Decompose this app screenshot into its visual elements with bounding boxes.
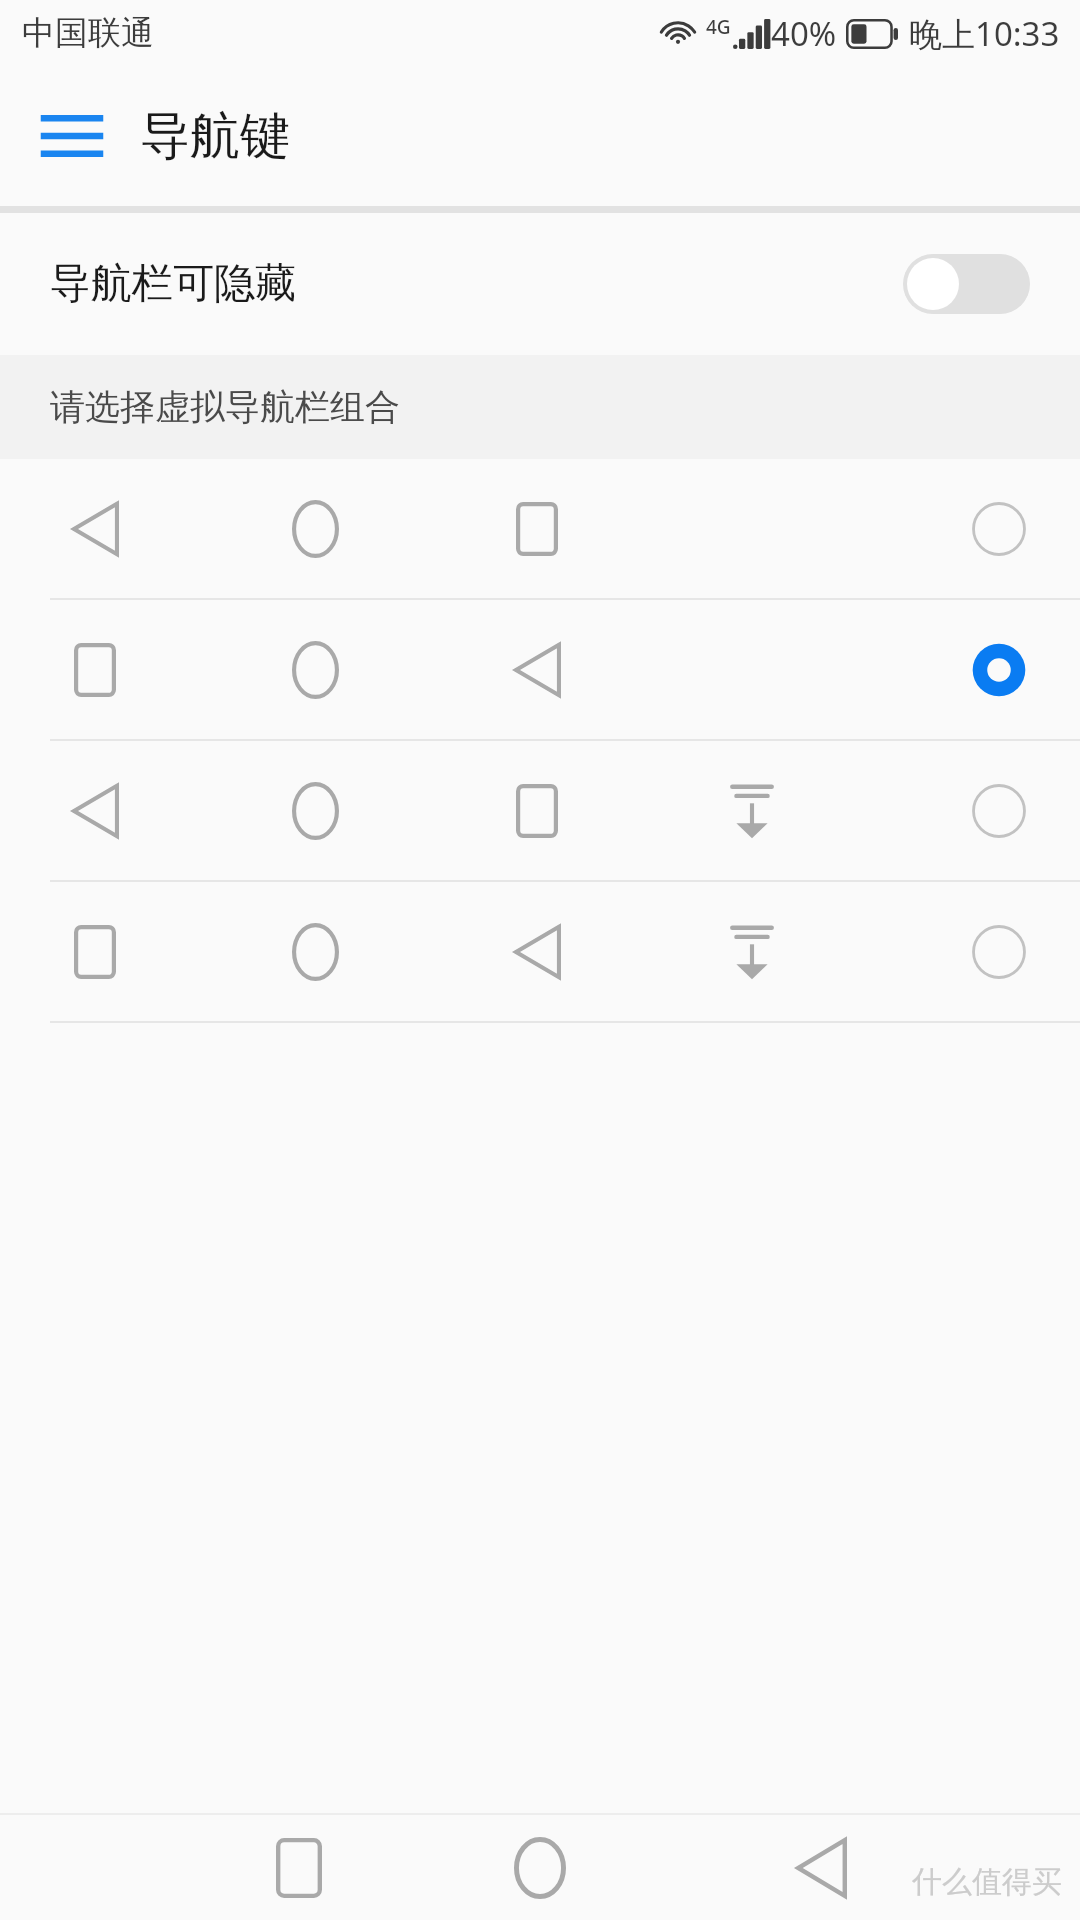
button[interactable] [0, 459, 1080, 600]
button[interactable]: Back [777, 1824, 865, 1912]
button[interactable]: Menu [30, 94, 114, 178]
staticText: 请选择虚拟导航栏组合 [50, 385, 400, 429]
staticText: 40% [771, 11, 837, 56]
button[interactable] [0, 600, 1080, 741]
other: Navigation bar hideable toggle [903, 254, 1030, 314]
button[interactable]: Recent apps [255, 1824, 343, 1912]
staticText: 中国联通 [22, 12, 154, 54]
button[interactable]: Home [496, 1824, 584, 1912]
button[interactable] [0, 882, 1080, 1023]
button[interactable] [0, 741, 1080, 882]
staticText: 导航键 [140, 105, 290, 168]
staticText: 什么值得买 [912, 1863, 1062, 1901]
staticText: 4G [706, 14, 731, 40]
staticText: 导航栏可隐藏 [50, 258, 903, 310]
staticText: 晚上10:33 [909, 11, 1060, 56]
button[interactable]: 导航栏可隐藏 [0, 213, 1080, 355]
